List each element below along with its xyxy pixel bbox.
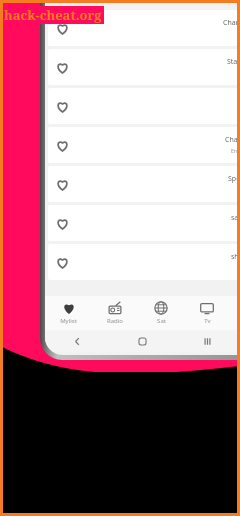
staticText: satellite tv xyxy=(231,213,240,223)
button[interactable]: Favourite xyxy=(48,10,240,46)
staticText: Sat xyxy=(157,317,166,325)
button[interactable]: Back xyxy=(45,330,110,352)
button[interactable]: Home xyxy=(110,330,175,352)
staticText: Entertainment xyxy=(231,148,240,155)
staticText: Tv xyxy=(204,317,211,325)
staticText: Sports Plus xyxy=(228,174,240,184)
button[interactable]: Favourite xyxy=(56,217,69,230)
staticText: hack-cheat.org xyxy=(4,6,102,24)
button[interactable]: Favourite xyxy=(48,88,240,124)
button[interactable]: Favourite xyxy=(48,244,240,280)
button[interactable]: Mylist xyxy=(45,296,92,330)
staticText: sheyla net xyxy=(231,252,240,262)
button[interactable]: Favourite xyxy=(56,100,69,113)
button[interactable]: Favourite xyxy=(56,139,69,152)
button[interactable]: Favourite xyxy=(56,61,69,74)
staticText: Channel one xyxy=(223,18,240,28)
button[interactable]: Recents xyxy=(175,330,240,352)
button[interactable]: Tv xyxy=(184,296,230,330)
button[interactable]: Favourite xyxy=(56,22,69,35)
button[interactable]: Favourite xyxy=(48,127,240,163)
button[interactable]: Radio xyxy=(92,296,138,330)
button[interactable]: Favourite xyxy=(56,178,69,191)
staticText: Radio xyxy=(107,317,123,325)
staticText: Station Live xyxy=(227,57,240,67)
button[interactable]: Sat xyxy=(138,296,184,330)
staticText: Mylist xyxy=(60,317,77,325)
button[interactable]: Favourite xyxy=(48,205,240,241)
button[interactable]: Favourite xyxy=(48,166,240,202)
button[interactable]: Favourite xyxy=(56,256,69,269)
button[interactable]: Favourite xyxy=(48,49,240,85)
staticText: Channel HD xyxy=(225,135,240,145)
